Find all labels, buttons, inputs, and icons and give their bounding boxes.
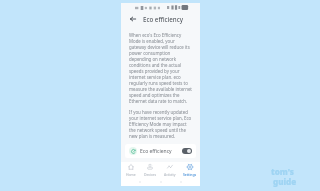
button[interactable]: Eco efficiency toggle	[182, 148, 192, 154]
staticText: Home	[126, 172, 136, 177]
staticText: Devices	[144, 172, 157, 177]
button[interactable]: Back	[127, 13, 139, 25]
button[interactable]: Activity	[160, 162, 180, 178]
staticText: Eco efficiency	[143, 15, 183, 23]
button[interactable]: Home	[121, 162, 140, 178]
staticText: Settings	[183, 172, 197, 177]
staticText: If you have recently updated your intern…	[129, 109, 192, 139]
staticText: tom's	[271, 166, 294, 177]
staticText: When eco's Eco Efficiency Mode is enable…	[129, 32, 192, 104]
button[interactable]: Settings	[180, 162, 200, 178]
button[interactable]: Devices	[140, 162, 160, 178]
button[interactable]: Eco efficiency	[125, 144, 196, 158]
staticText: Activity	[164, 172, 176, 177]
staticText: guide	[273, 176, 297, 187]
staticText: Eco efficiency	[140, 148, 172, 155]
